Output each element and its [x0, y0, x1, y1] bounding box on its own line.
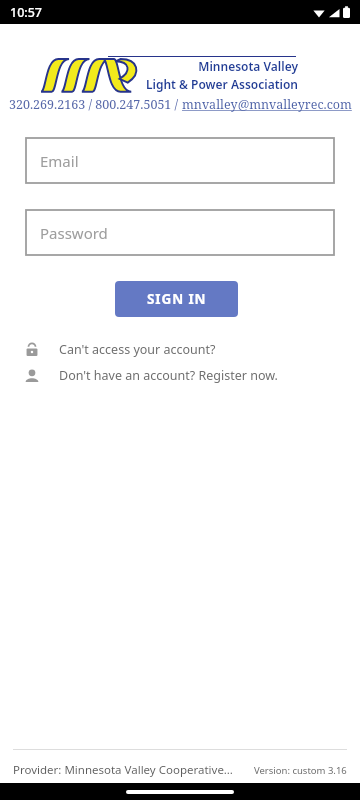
staticText: 10:57 [10, 4, 43, 21]
staticText: Can't access your account? [59, 341, 216, 358]
button[interactable]: Can't access your account [24, 341, 360, 358]
button[interactable]: Register now [24, 367, 360, 384]
staticText: Don't have an account? Register now. [59, 367, 278, 384]
staticText: Provider: Minnesota Valley Cooperative… [13, 762, 233, 778]
button[interactable]: mnvalley@mnvalleyrec.com [182, 96, 352, 113]
other: Can't access your account [24, 342, 40, 358]
button[interactable]: SIGN IN [115, 281, 238, 317]
staticText: Version: custom 3.16 [254, 764, 347, 777]
button[interactable]: Password [26, 210, 334, 255]
button[interactable]: Email [26, 138, 334, 183]
staticText: Light & Power Association [140, 76, 298, 92]
staticText: SIGN IN [147, 290, 207, 308]
other: Register now [24, 368, 40, 384]
staticText: Email [40, 151, 79, 171]
staticText: 320.269.2163 / 800.247.5051 / [9, 96, 182, 113]
staticText: Minnesota Valley Cooperative [140, 58, 298, 74]
staticText: Password [40, 223, 108, 243]
